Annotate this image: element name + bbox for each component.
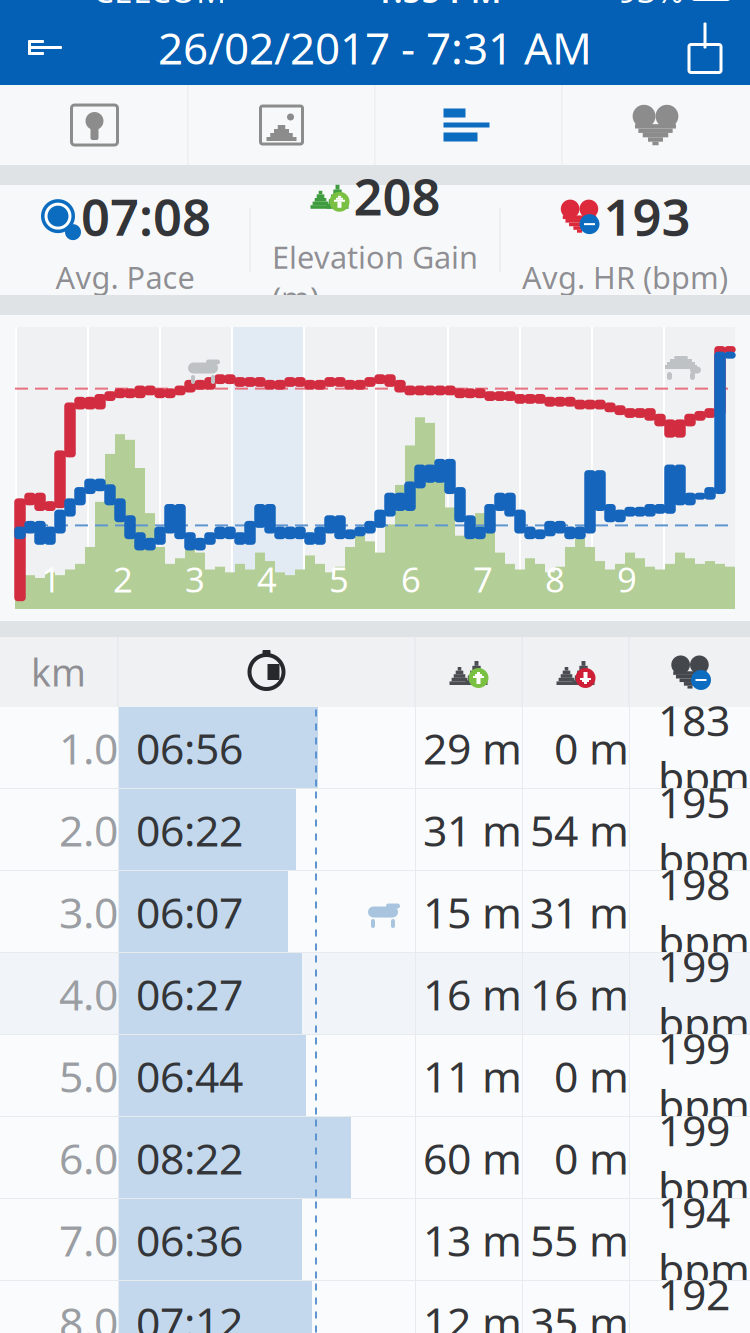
staticText: 199 bpm (658, 937, 750, 1051)
staticText: 3 (185, 556, 205, 602)
staticText: 06:56 (136, 720, 243, 776)
staticText: 9 (617, 556, 637, 602)
button[interactable]: 5.0 (0, 1035, 750, 1117)
button[interactable]: Share (660, 10, 750, 85)
staticText: km (31, 647, 86, 697)
staticText: Avg. HR (bpm) (522, 257, 728, 297)
staticText: 6.0 (59, 1130, 118, 1186)
staticText: 3.0 (59, 884, 118, 940)
staticText: 198 bpm (658, 855, 750, 969)
staticText: 15 m (423, 884, 522, 940)
staticText: 35 m (530, 1294, 629, 1333)
staticText: 31 m (423, 802, 522, 858)
staticText: 7.0 (59, 1212, 118, 1268)
staticText: Avg. Pace (55, 257, 194, 297)
staticText: 26/02/2017 - 7:31 AM (158, 18, 592, 77)
staticText: 8.0 (59, 1294, 118, 1333)
staticText: 29 m (423, 720, 522, 776)
staticText: 06:22 (136, 802, 243, 858)
button[interactable]: 1.0 (0, 707, 750, 789)
staticText: 199 bpm (658, 1101, 750, 1215)
staticText: 60 m (423, 1130, 522, 1186)
staticText: 0 m (554, 720, 629, 776)
staticText: 06:07 (136, 884, 243, 940)
button[interactable]: Photos (188, 85, 374, 165)
staticText: CELCOM (93, 0, 226, 12)
staticText: 13 m (423, 1212, 522, 1268)
staticText: 16 m (530, 966, 629, 1022)
staticText: 54 m (530, 802, 629, 858)
button[interactable]: Heart rate (562, 85, 748, 165)
staticText: 93% (618, 0, 684, 12)
staticText: Elevation Gain (m) (272, 236, 478, 318)
staticText: 2 (113, 556, 133, 602)
button[interactable]: 2.0 (0, 789, 750, 871)
staticText: 08:22 (136, 1130, 243, 1186)
button[interactable]: Map (1, 85, 187, 165)
button[interactable]: 3.0 (0, 871, 750, 953)
button[interactable]: 6.0 (0, 1117, 750, 1199)
staticText: 193 (603, 182, 690, 250)
staticText: 06:27 (136, 966, 243, 1022)
staticText: 183 bpm (658, 691, 750, 805)
staticText: 31 m (530, 884, 629, 940)
staticText: 7 (473, 556, 493, 602)
staticText: 192 bpm (658, 1265, 750, 1333)
staticText: 4 (257, 556, 277, 602)
staticText: 194 bpm (658, 1183, 750, 1297)
staticText: 1:55 PM (374, 0, 501, 12)
staticText: 06:36 (136, 1212, 243, 1268)
staticText: 11 m (423, 1048, 522, 1104)
staticText: 55 m (530, 1212, 629, 1268)
staticText: 0 m (554, 1130, 629, 1186)
staticText: 0 m (554, 1048, 629, 1104)
staticText: 06:44 (136, 1048, 243, 1104)
staticText: 195 bpm (658, 773, 750, 887)
staticText: 1.0 (59, 720, 118, 776)
staticText: 5.0 (59, 1048, 118, 1104)
staticText: 16 m (423, 966, 522, 1022)
button[interactable]: Splits (375, 85, 561, 165)
button[interactable]: Back (0, 10, 90, 85)
staticText: 199 bpm (658, 1019, 750, 1133)
button[interactable]: 4.0 (0, 953, 750, 1035)
button[interactable]: 8.0 (0, 1281, 750, 1333)
staticText: 12 m (423, 1294, 522, 1333)
staticText: 1 (41, 556, 61, 602)
staticText: 07:08 (81, 182, 211, 250)
staticText: 5 (329, 556, 349, 602)
staticText: 4.0 (59, 966, 118, 1022)
staticText: 208 (353, 162, 440, 229)
button[interactable]: 7.0 (0, 1199, 750, 1281)
staticText: 6 (401, 556, 421, 602)
staticText: 07:12 (136, 1294, 243, 1333)
staticText: 2.0 (59, 802, 118, 858)
staticText: 8 (545, 556, 565, 602)
